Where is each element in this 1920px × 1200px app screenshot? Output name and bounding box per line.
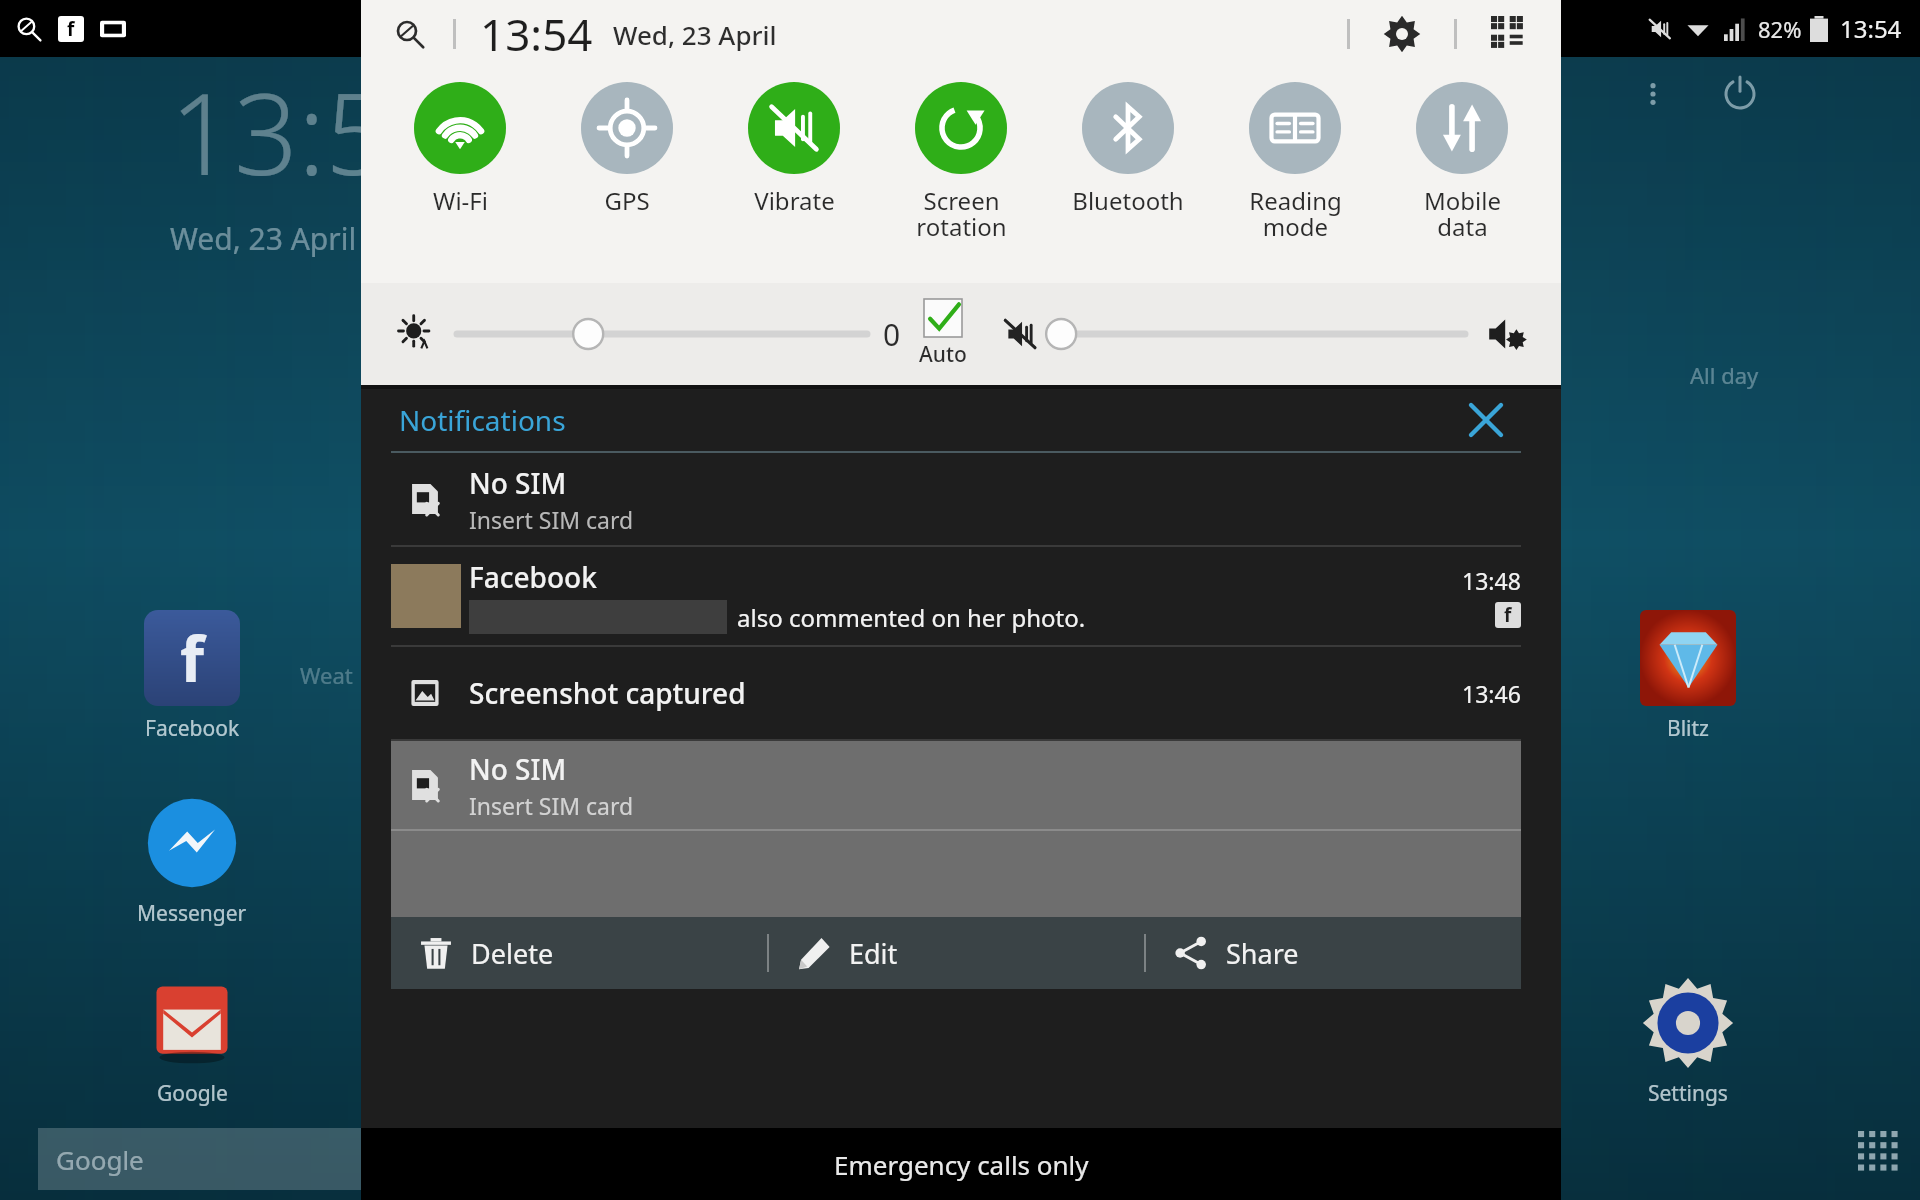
staticText: Delete — [471, 935, 554, 972]
staticText: f — [1504, 602, 1512, 628]
staticText: Auto — [919, 340, 967, 369]
staticText: Messenger — [137, 899, 247, 928]
staticText: 0 — [883, 314, 901, 355]
staticText: 82% — [1758, 14, 1802, 44]
staticText: GPS — [604, 184, 650, 217]
staticText: Google — [56, 1142, 144, 1177]
staticText: 13:46 — [1462, 678, 1521, 709]
staticText: Insert SIM card — [469, 790, 634, 821]
staticText: 13:54 — [480, 4, 593, 64]
staticText: Mobile data — [1424, 184, 1501, 243]
button[interactable]: Settings — [1376, 8, 1428, 60]
button[interactable]: f — [132, 610, 252, 743]
button[interactable]: Edit quick settings — [1483, 8, 1535, 60]
button[interactable]: No SIM — [391, 741, 1521, 829]
staticText: All day — [1690, 360, 1759, 390]
staticText: No SIM — [469, 464, 567, 502]
button[interactable]: Facebook — [361, 547, 1561, 645]
staticText: Weat — [300, 660, 353, 690]
button[interactable]: Google — [132, 975, 252, 1108]
staticText: Notifications — [399, 401, 566, 439]
staticText: Wi-Fi — [433, 184, 488, 217]
button[interactable]: Reading mode — [1221, 82, 1369, 243]
button[interactable]: Messenger — [132, 795, 252, 928]
staticText: f — [67, 16, 75, 42]
staticText: Bluetooth — [1072, 184, 1184, 217]
staticText: Insert SIM card — [469, 504, 634, 535]
button[interactable]: Auto — [919, 299, 967, 369]
staticText: Vibrate — [754, 184, 835, 217]
staticText: Blitz — [1667, 714, 1709, 743]
staticText: Screenshot captured — [469, 674, 746, 712]
staticText: also commented on her photo. — [737, 601, 1086, 634]
button[interactable]: Close notifications — [1463, 397, 1509, 443]
button[interactable]: Share — [1146, 917, 1521, 989]
button[interactable]: Mobile data — [1388, 82, 1536, 243]
staticText: Reading mode — [1249, 184, 1342, 243]
staticText: Google — [157, 1079, 228, 1108]
button[interactable]: Auto brightness — [389, 307, 443, 361]
button[interactable]: Screen rotation — [887, 82, 1035, 243]
staticText: Facebook — [145, 714, 240, 743]
staticText: Facebook — [469, 558, 597, 596]
staticText: 13:48 — [1462, 565, 1521, 596]
staticText: No SIM — [469, 750, 567, 788]
staticText: Settings — [1648, 1079, 1728, 1108]
button[interactable]: Search — [389, 13, 431, 55]
button[interactable]: Apps — [1845, 1118, 1915, 1188]
button[interactable]: Power — [1714, 68, 1766, 120]
staticText: f — [180, 616, 204, 700]
staticText: 13:5 — [170, 55, 390, 208]
button[interactable]: Edit — [769, 917, 1144, 989]
button[interactable]: Vibrate — [720, 82, 868, 217]
button[interactable]: Sound settings — [1479, 307, 1533, 361]
staticText: Screen rotation — [916, 184, 1007, 243]
staticText: Emergency calls only — [834, 1147, 1089, 1182]
button[interactable]: Settings — [1628, 975, 1748, 1108]
button[interactable]: Bluetooth — [1054, 82, 1202, 217]
button[interactable]: Google — [38, 1128, 368, 1190]
button[interactable]: Wi-Fi — [386, 82, 534, 217]
button[interactable]: Screenshot captured — [361, 647, 1561, 739]
button[interactable]: Blitz — [1628, 610, 1748, 743]
staticText: Wed, 23 April — [170, 218, 357, 259]
staticText: 13:54 — [1840, 12, 1902, 45]
button[interactable]: Mute — [993, 308, 1045, 360]
button[interactable]: GPS — [553, 82, 701, 217]
button[interactable]: Delete — [391, 917, 767, 989]
staticText: Edit — [849, 935, 898, 972]
staticText: Share — [1226, 935, 1299, 972]
button[interactable]: More options — [1630, 71, 1676, 117]
staticText: Wed, 23 April — [613, 17, 777, 52]
button[interactable]: No SIM — [361, 453, 1561, 545]
